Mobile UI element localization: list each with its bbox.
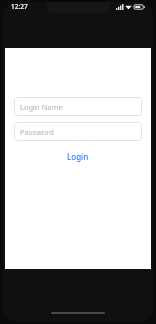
staticText: Login	[67, 151, 89, 162]
staticText: Password	[20, 127, 54, 137]
other: Cellular signal	[116, 4, 123, 10]
other: Battery	[134, 4, 145, 10]
staticText: Login Name	[20, 102, 63, 112]
button[interactable]: Login	[57, 149, 99, 164]
other: Wi-Fi	[125, 4, 132, 10]
staticText: 12:27	[11, 2, 28, 11]
button[interactable]: Login Name	[14, 97, 142, 116]
button[interactable]: Password	[14, 122, 142, 141]
